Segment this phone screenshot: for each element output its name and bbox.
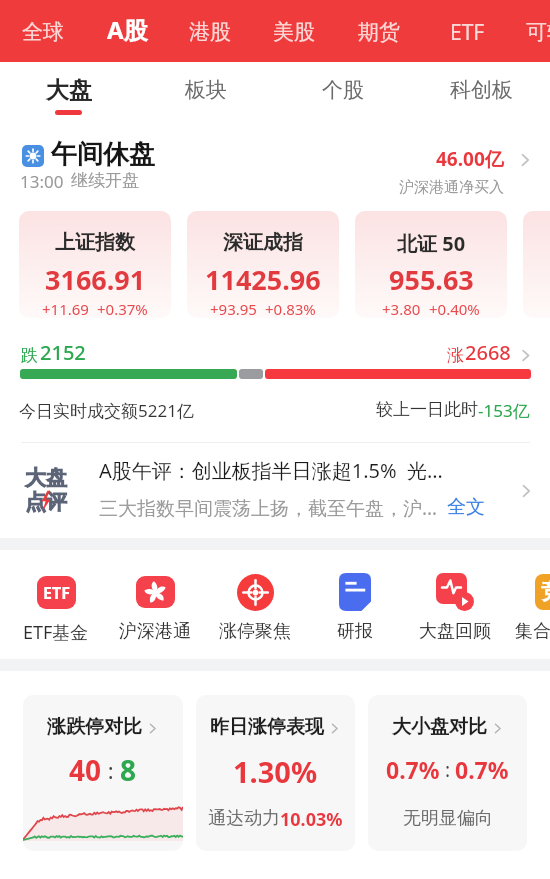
staticText: 涨跌停对比 [47, 715, 142, 739]
staticText: 大小盘对比 [392, 715, 487, 739]
staticText: 较上一日此时 [376, 399, 478, 420]
button[interactable]: 创业板指 [523, 211, 550, 318]
staticText: 竞 [541, 578, 550, 606]
staticText: : [440, 757, 455, 783]
button[interactable]: 竞 [503, 572, 550, 643]
staticText: 11425.96 [205, 261, 321, 298]
staticText: 沪深港通 [119, 620, 191, 643]
staticText: 可转债 [526, 19, 550, 45]
staticText: 0.7% [386, 754, 440, 785]
staticText: 3166.91 [45, 261, 146, 298]
staticText: 个股 [322, 77, 364, 103]
staticText: 今日实时成交额5221亿 [19, 399, 194, 422]
staticText: 13:00 [20, 170, 64, 193]
staticText: +93.95 [210, 299, 257, 318]
staticText: 点评 [25, 489, 67, 515]
staticText: +3.80 [382, 299, 421, 318]
staticText: 板块 [185, 77, 227, 103]
button[interactable]: 大小盘对比 [368, 695, 527, 851]
staticText: 深证成指 [223, 230, 303, 255]
staticText: 科创板 [450, 77, 513, 103]
button[interactable]: 期货 [346, 11, 412, 53]
staticText: 期货 [358, 19, 400, 45]
staticText: +0.37% [97, 299, 148, 318]
button[interactable]: 北证 50 [355, 211, 507, 318]
staticText: 昨日涨停表现 [210, 715, 324, 739]
staticText: 三大指数早间震荡上扬，截至午盘，沪… [99, 495, 438, 521]
staticText: 1.30% [233, 752, 318, 791]
staticText: 上证指数 [55, 230, 135, 255]
staticText: 2668 [465, 339, 511, 366]
button[interactable]: 午间休盘 [0, 130, 550, 192]
button[interactable]: 板块 [137, 62, 274, 118]
staticText: 美股 [273, 19, 315, 45]
button[interactable]: 涨停聚焦 [207, 572, 303, 643]
staticText: 8 [120, 751, 137, 789]
staticText: 40 [69, 751, 102, 789]
staticText: A股 [107, 13, 148, 46]
staticText: 大盘 [25, 465, 67, 491]
button[interactable]: 大盘回顾 [407, 572, 503, 643]
staticText: A股午评：创业板指半日涨超1.5% 光… [99, 457, 443, 484]
staticText: 集合竞价 [515, 620, 550, 643]
staticText: 跌 [21, 345, 38, 366]
button[interactable]: 昨日涨停表现 [196, 695, 355, 851]
button[interactable]: ETF [8, 572, 104, 645]
button[interactable]: 科创板 [412, 62, 550, 118]
button[interactable]: 美股 [261, 11, 327, 53]
button[interactable]: 港股 [177, 11, 243, 53]
staticText: 涨 [447, 345, 464, 366]
button[interactable]: 个股 [274, 62, 412, 118]
staticText: 全文 [447, 495, 485, 519]
staticText: -153亿 [478, 399, 530, 422]
button[interactable]: A股 [94, 5, 160, 53]
staticText: : [102, 755, 120, 785]
staticText: 继续开盘 [71, 170, 139, 191]
button[interactable]: 研报 [307, 572, 403, 643]
staticText: ETF基金 [23, 620, 89, 645]
button[interactable]: 沪深港通 [107, 572, 203, 643]
staticText: 涨停聚焦 [219, 620, 291, 643]
staticText: 全球 [22, 19, 64, 45]
staticText: ETF [43, 582, 70, 604]
staticText: 46.00亿 [436, 146, 504, 172]
button[interactable]: 大盘 [0, 443, 550, 538]
staticText: 无明显偏向 [403, 807, 493, 830]
button[interactable]: 可转债 [524, 11, 550, 53]
staticText: +0.83% [265, 299, 316, 318]
staticText: 0.7% [455, 754, 509, 785]
button[interactable]: 深证成指 [187, 211, 339, 318]
button[interactable]: 全球 [10, 11, 76, 53]
staticText: 午间休盘 [51, 138, 155, 171]
button[interactable]: ETF [434, 11, 500, 53]
button[interactable]: 大盘 [0, 62, 137, 118]
staticText: 港股 [189, 19, 231, 45]
staticText: 通达动力 [208, 807, 280, 830]
staticText: ETF [450, 18, 485, 47]
button[interactable]: 涨跌停对比 [23, 695, 183, 851]
staticText: 10.03% [280, 807, 343, 832]
staticText: 大盘回顾 [419, 620, 491, 643]
staticText: 沪深港通净买入 [399, 178, 504, 197]
staticText: 2152 [40, 339, 86, 366]
staticText: 955.63 [389, 261, 474, 298]
staticText: 北证 50 [397, 230, 466, 257]
staticText: 研报 [337, 620, 373, 643]
staticText: +0.40% [429, 299, 480, 318]
staticText: +11.69 [42, 299, 89, 318]
button[interactable]: 上证指数 [19, 211, 171, 318]
staticText: 大盘 [46, 76, 92, 105]
